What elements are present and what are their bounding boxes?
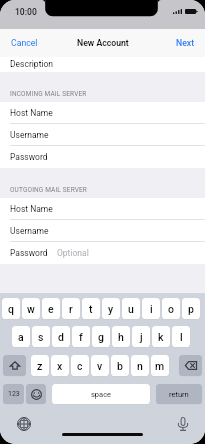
- button[interactable]: Change keyboard: [16, 416, 31, 431]
- button[interactable]: p: [182, 298, 200, 319]
- button[interactable]: Username: [0, 220, 205, 242]
- staticText: o: [168, 303, 174, 315]
- button[interactable]: x: [51, 355, 69, 376]
- staticText: r: [69, 303, 73, 315]
- button[interactable]: Dictation: [175, 416, 190, 431]
- staticText: s: [38, 331, 44, 343]
- button[interactable]: m: [151, 355, 169, 376]
- button[interactable]: s: [32, 326, 50, 347]
- staticText: g: [98, 331, 104, 343]
- button[interactable]: Emoji: [26, 384, 46, 404]
- staticText: Host Name: [10, 108, 53, 118]
- staticText: Optional: [57, 248, 89, 258]
- button[interactable]: k: [152, 326, 170, 347]
- button[interactable]: return: [156, 384, 202, 404]
- button[interactable]: Password: [0, 146, 205, 168]
- button[interactable]: 123: [3, 384, 24, 404]
- staticText: y: [108, 303, 114, 315]
- staticText: e: [48, 303, 54, 315]
- button[interactable]: Password: [0, 242, 205, 264]
- staticText: Cancel: [11, 38, 38, 48]
- staticText: Password: [10, 152, 48, 162]
- button[interactable]: Shift: [3, 355, 26, 376]
- staticText: Username: [10, 130, 49, 140]
- staticText: j: [140, 331, 143, 343]
- button[interactable]: Host Name: [0, 102, 205, 124]
- button[interactable]: Cancel: [0, 34, 49, 52]
- staticText: q: [8, 303, 14, 315]
- button[interactable]: z: [31, 355, 49, 376]
- button[interactable]: u: [122, 298, 140, 319]
- staticText: k: [158, 331, 164, 343]
- button[interactable]: c: [71, 355, 89, 376]
- staticText: Host Name: [10, 204, 53, 214]
- staticText: x: [57, 360, 63, 372]
- staticText: INCOMING MAIL SERVER: [10, 90, 87, 98]
- button[interactable]: j: [132, 326, 150, 347]
- button[interactable]: g: [92, 326, 110, 347]
- staticText: c: [77, 360, 83, 372]
- button[interactable]: a: [12, 326, 30, 347]
- staticText: New Account: [77, 38, 129, 48]
- staticText: return: [169, 390, 189, 399]
- staticText: w: [27, 303, 35, 315]
- staticText: Next: [176, 38, 195, 48]
- staticText: OUTGOING MAIL SERVER: [10, 186, 88, 194]
- staticText: Password: [10, 248, 48, 258]
- button[interactable]: d: [52, 326, 70, 347]
- staticText: m: [155, 360, 165, 372]
- button[interactable]: space: [52, 384, 150, 404]
- staticText: u: [128, 303, 134, 315]
- staticText: l: [180, 331, 183, 343]
- button[interactable]: e: [42, 298, 60, 319]
- staticText: p: [188, 303, 194, 315]
- button[interactable]: h: [112, 326, 130, 347]
- button[interactable]: y: [102, 298, 120, 319]
- staticText: n: [137, 360, 143, 372]
- button[interactable]: o: [162, 298, 180, 319]
- staticText: b: [117, 360, 123, 372]
- staticText: f: [79, 331, 83, 343]
- button[interactable]: w: [22, 298, 40, 319]
- button[interactable]: Username: [0, 124, 205, 146]
- button[interactable]: l: [172, 326, 190, 347]
- button[interactable]: t: [82, 298, 100, 319]
- staticText: h: [118, 331, 124, 343]
- button[interactable]: Backspace: [179, 355, 202, 376]
- staticText: t: [89, 303, 93, 315]
- button[interactable]: b: [111, 355, 129, 376]
- staticText: v: [97, 360, 103, 372]
- staticText: space: [91, 390, 112, 399]
- button[interactable]: q: [2, 298, 20, 319]
- staticText: i: [150, 303, 153, 315]
- button[interactable]: r: [62, 298, 80, 319]
- button[interactable]: n: [131, 355, 149, 376]
- button[interactable]: v: [91, 355, 109, 376]
- staticText: Username: [10, 226, 49, 236]
- button[interactable]: i: [142, 298, 160, 319]
- staticText: 10:00: [15, 7, 37, 17]
- button[interactable]: Host Name: [0, 198, 205, 220]
- button[interactable]: Next: [166, 34, 205, 52]
- staticText: z: [37, 360, 43, 372]
- staticText: d: [58, 331, 64, 343]
- button[interactable]: f: [72, 326, 90, 347]
- staticText: Description: [10, 59, 54, 69]
- staticText: a: [18, 331, 24, 343]
- staticText: 123: [8, 390, 20, 398]
